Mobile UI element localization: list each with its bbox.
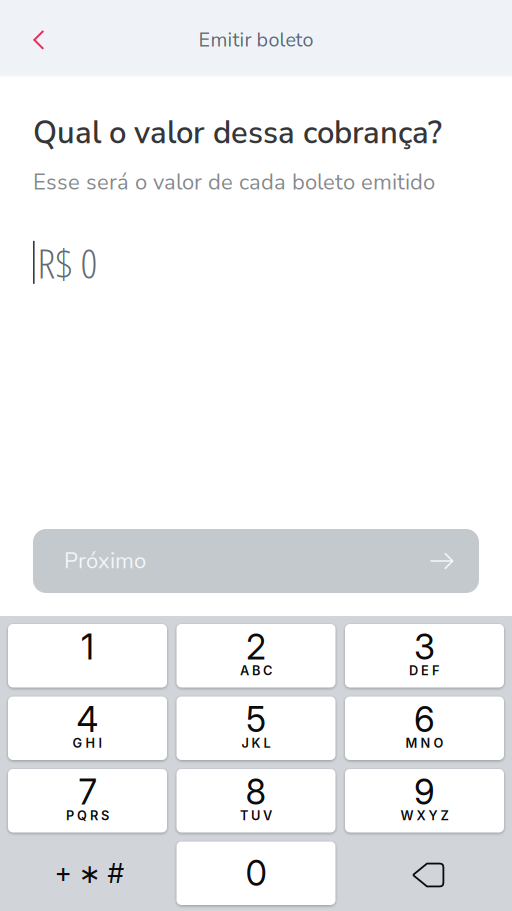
staticText: 3 <box>414 626 435 668</box>
staticText: W X Y Z <box>400 808 448 823</box>
staticText: Próximo <box>64 546 146 576</box>
staticText: T U V <box>240 808 272 823</box>
staticText: Emitir boleto <box>198 26 313 53</box>
staticText: 6 <box>414 698 435 740</box>
staticText: R$ 0 <box>38 234 98 290</box>
button[interactable]: 4 <box>8 696 167 760</box>
staticText: + ∗ # <box>54 857 124 889</box>
button[interactable]: Back <box>17 18 61 62</box>
staticText: Qual o valor dessa cobrança? <box>33 112 442 154</box>
staticText: 2 <box>246 626 266 668</box>
staticText: 4 <box>76 698 98 740</box>
staticText: G H I <box>72 735 102 751</box>
button[interactable]: 8 <box>176 769 335 832</box>
staticText: D E F <box>409 663 440 678</box>
staticText: 5 <box>246 698 266 740</box>
button[interactable]: 7 <box>8 769 167 832</box>
staticText: 8 <box>245 771 266 813</box>
button[interactable]: Symbols <box>8 841 167 905</box>
staticText: P Q R S <box>66 808 109 823</box>
button[interactable]: 0 <box>176 841 335 905</box>
staticText: 1 <box>81 626 94 668</box>
button[interactable]: 6 <box>345 696 504 760</box>
staticText: A B C <box>240 663 272 678</box>
button[interactable]: 5 <box>176 696 335 760</box>
staticText: 9 <box>414 771 435 813</box>
staticText: M N O <box>405 735 443 751</box>
staticText: J K L <box>241 735 270 751</box>
button[interactable]: 1 <box>8 624 167 687</box>
button[interactable]: 3 <box>345 624 504 687</box>
button[interactable]: 9 <box>345 769 504 832</box>
staticText: 7 <box>78 771 96 813</box>
staticText: 0 <box>245 852 266 894</box>
button[interactable]: Próximo <box>33 529 479 593</box>
button[interactable]: 2 <box>176 624 335 687</box>
staticText: Esse será o valor de cada boleto emitido <box>33 167 435 197</box>
button[interactable]: Delete <box>345 841 504 905</box>
